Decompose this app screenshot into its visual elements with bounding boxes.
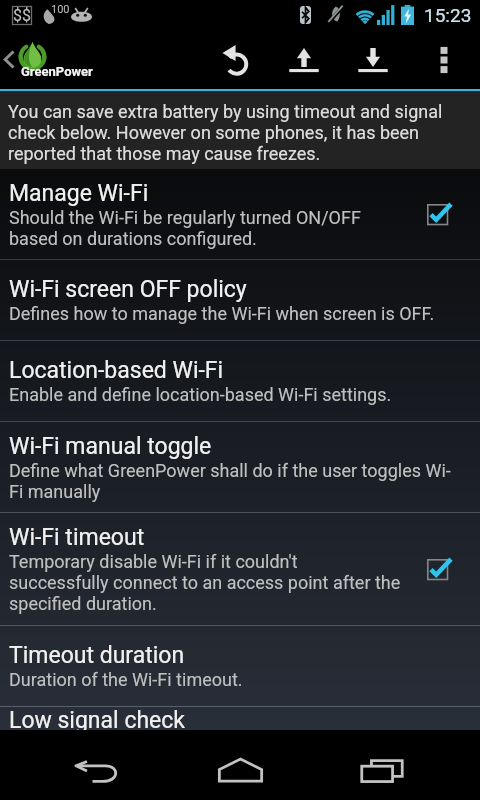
staticText: Duration of the Wi-Fi timeout. [9, 669, 243, 690]
button[interactable]: Wi-Fi screen OFF policy [0, 260, 480, 340]
staticText: Should the Wi-Fi be regularly turned ON/… [9, 207, 401, 249]
staticText: GreenPower [21, 64, 93, 79]
staticText: Manage Wi-Fi [9, 180, 149, 207]
button[interactable]: Wi-Fi manual toggle [0, 422, 480, 512]
button[interactable]: Back [38, 730, 158, 800]
staticText: $$ [13, 6, 31, 25]
staticText: Define what GreenPower shall do if the u… [9, 460, 459, 502]
button[interactable]: Timeout duration [0, 626, 480, 706]
button[interactable]: GreenPower [0, 31, 110, 89]
staticText: 15:23 [424, 4, 472, 26]
staticText: Wi-Fi timeout [9, 524, 145, 551]
staticText: Low signal check [9, 707, 185, 730]
staticText: Wi-Fi screen OFF policy [9, 276, 247, 303]
staticText: Location-based Wi-Fi [9, 357, 224, 384]
staticText: You can save extra battery by using time… [8, 101, 460, 164]
button[interactable]: More options [408, 31, 480, 89]
button[interactable]: Manage Wi-Fi [0, 169, 480, 259]
button[interactable]: Export settings [269, 31, 338, 89]
staticText: Wi-Fi manual toggle [9, 433, 212, 460]
button[interactable]: Home [180, 730, 300, 800]
button[interactable]: Import settings [338, 31, 408, 89]
staticText: Timeout duration [9, 642, 185, 669]
button[interactable]: Recent apps [322, 730, 442, 800]
button[interactable]: Restore defaults [201, 31, 269, 89]
staticText: Defines how to manage the Wi-Fi when scr… [9, 303, 435, 324]
button[interactable]: Low signal check [0, 707, 480, 730]
staticText: Temporary disable Wi-Fi if it couldn't s… [9, 551, 401, 614]
staticText: Enable and define location-based Wi-Fi s… [9, 384, 392, 405]
button[interactable]: Wi-Fi timeout [0, 513, 480, 625]
button[interactable]: Location-based Wi-Fi [0, 341, 480, 421]
staticText: 100 [51, 3, 70, 16]
